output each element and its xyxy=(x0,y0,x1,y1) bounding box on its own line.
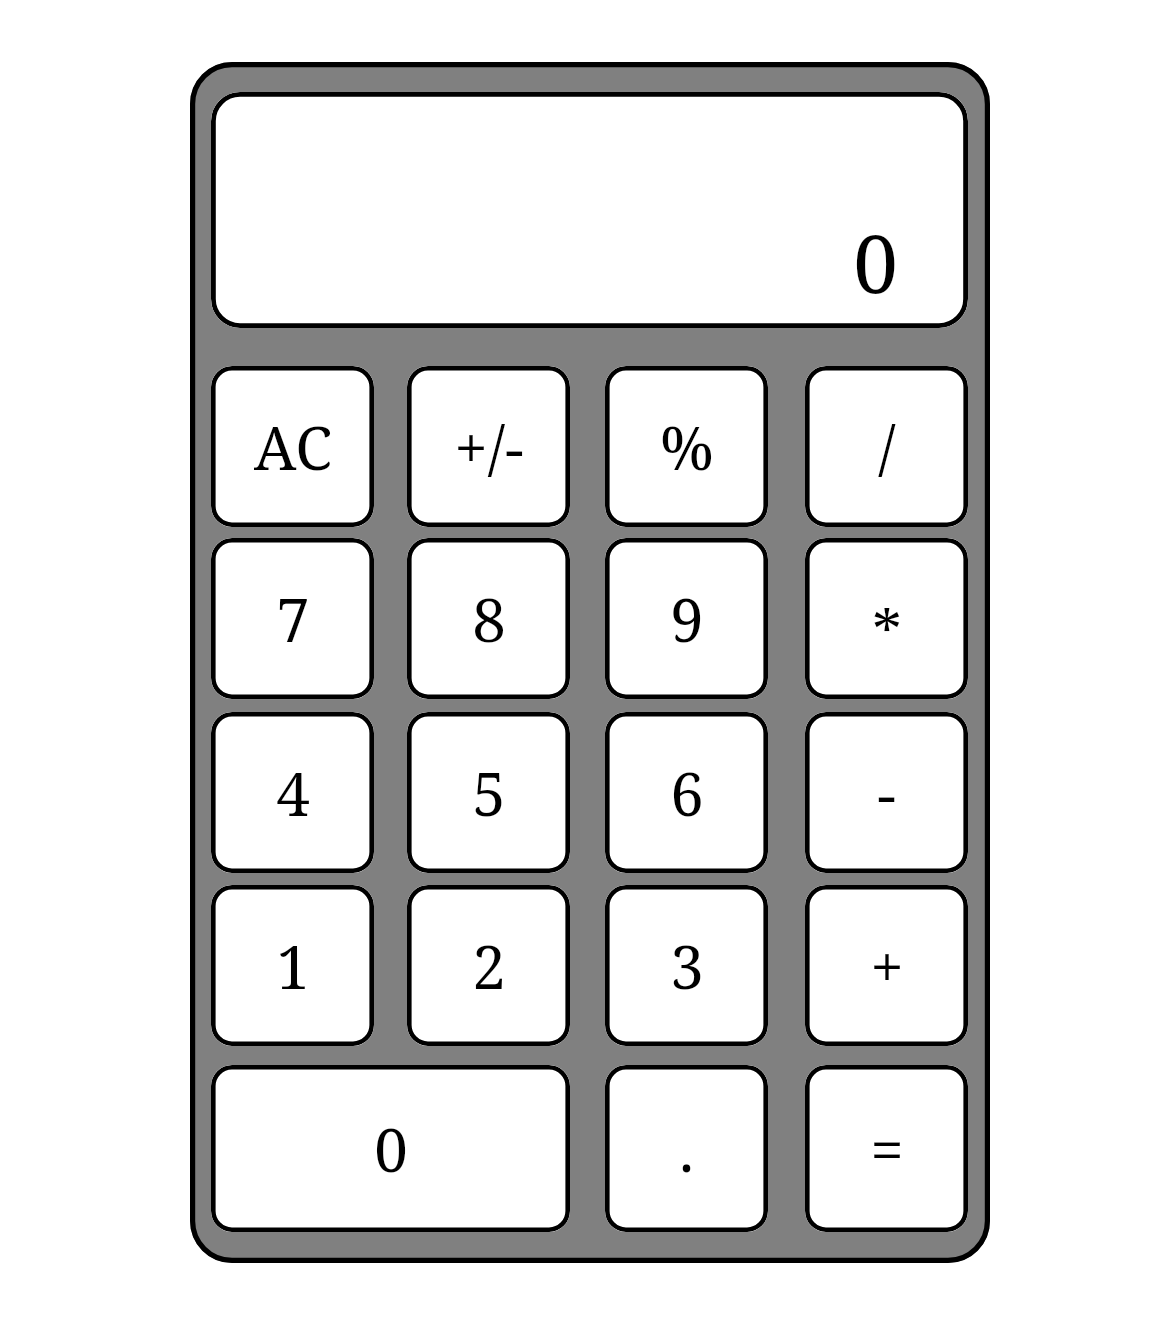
button[interactable]: 1 xyxy=(211,885,374,1046)
staticText: 5 xyxy=(472,752,506,834)
staticText: 9 xyxy=(670,578,704,660)
staticText: 1 xyxy=(276,925,310,1007)
button[interactable]: 3 xyxy=(605,885,768,1046)
staticText: . xyxy=(679,1108,694,1190)
button[interactable]: 2 xyxy=(407,885,570,1046)
button[interactable]: 4 xyxy=(211,712,374,873)
button[interactable]: = xyxy=(805,1065,968,1232)
button[interactable]: 5 xyxy=(407,712,570,873)
staticText: 0 xyxy=(374,1108,408,1190)
staticText: 3 xyxy=(670,925,704,1007)
staticText: % xyxy=(660,406,714,488)
button[interactable]: . xyxy=(605,1065,768,1232)
button[interactable]: Calculator display xyxy=(211,92,968,328)
staticText: 6 xyxy=(670,752,704,834)
button[interactable]: 0 xyxy=(211,1065,570,1232)
staticText: 4 xyxy=(276,752,310,834)
button[interactable]: + xyxy=(805,885,968,1046)
button[interactable]: * xyxy=(805,538,968,699)
staticText: +/- xyxy=(454,406,524,488)
staticText: AC xyxy=(254,406,332,488)
button[interactable]: / xyxy=(805,366,968,527)
staticText: / xyxy=(878,406,896,488)
staticText: 2 xyxy=(472,925,506,1007)
button[interactable]: 6 xyxy=(605,712,768,873)
button[interactable]: % xyxy=(605,366,768,527)
button[interactable]: +/- xyxy=(407,366,570,527)
button[interactable]: 9 xyxy=(605,538,768,699)
button[interactable]: 7 xyxy=(211,538,374,699)
button[interactable]: - xyxy=(805,712,968,873)
staticText: 7 xyxy=(276,578,310,660)
staticText: 0 xyxy=(853,207,898,316)
button[interactable]: AC xyxy=(211,366,374,527)
staticText: + xyxy=(870,925,904,1007)
button[interactable]: 8 xyxy=(407,538,570,699)
staticText: 8 xyxy=(472,578,506,660)
staticText: = xyxy=(870,1108,904,1190)
staticText: * xyxy=(872,590,902,672)
staticText: - xyxy=(877,752,896,834)
